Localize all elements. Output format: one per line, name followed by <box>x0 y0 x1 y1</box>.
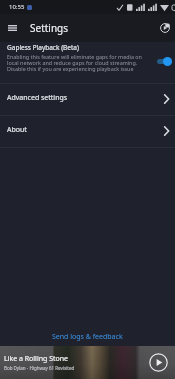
button[interactable]: Gapless Playback (Beta) <box>0 42 175 83</box>
button[interactable]: Gapless Playback toggle <box>157 57 172 66</box>
staticText: Send logs & feedback <box>52 332 123 342</box>
button[interactable]: Send logs & feedback <box>0 327 175 346</box>
staticText: About <box>7 125 27 135</box>
staticText: Bob Dylan - Highway 61 Revisited <box>4 365 75 371</box>
button[interactable]: Advanced settings <box>0 84 175 115</box>
button[interactable]: Menu <box>0 16 24 40</box>
staticText: Advanced settings <box>7 93 68 103</box>
staticText: Settings <box>30 21 69 35</box>
button[interactable]: About <box>0 116 175 147</box>
staticText: Like a Rolling Stone <box>4 354 69 364</box>
staticText: Enabling this feature will eliminate gap… <box>7 53 145 72</box>
staticText: Gapless Playback (Beta) <box>7 43 79 52</box>
button[interactable] <box>0 346 175 379</box>
staticText: 10:55 <box>9 3 25 11</box>
button[interactable]: Cast <box>153 16 175 40</box>
button[interactable]: Play <box>149 353 168 372</box>
